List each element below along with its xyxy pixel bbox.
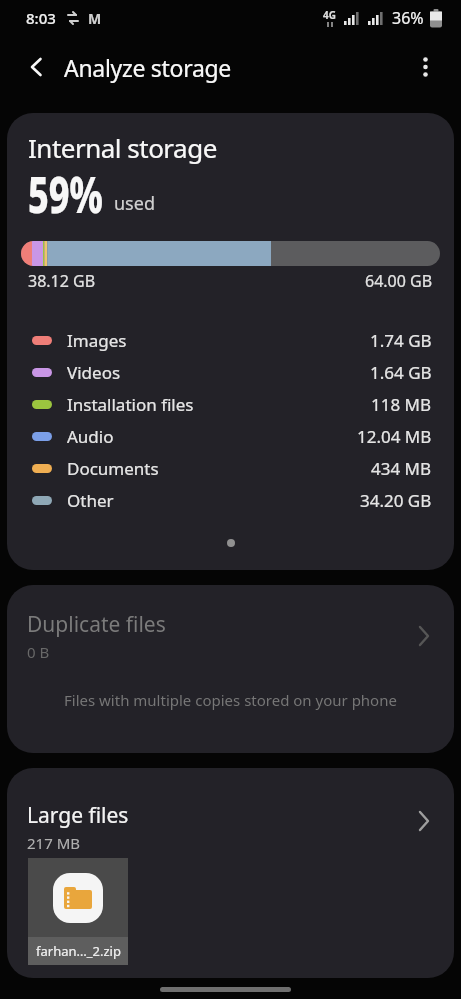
staticText: 59%	[28, 159, 103, 228]
staticText: 12.04 MB	[357, 425, 432, 448]
button[interactable]: Videos	[28, 356, 433, 388]
staticText: Analyze storage	[64, 52, 232, 83]
staticText: Documents	[67, 457, 159, 480]
staticText: 36%	[392, 7, 424, 29]
staticText: 1.64 GB	[370, 361, 432, 384]
staticText: M	[88, 9, 102, 28]
button[interactable]: Images	[28, 324, 433, 356]
staticText: 0 B	[27, 642, 50, 662]
staticText: 64.00 GB	[365, 270, 433, 292]
button[interactable]	[401, 43, 449, 91]
button[interactable]: Documents	[28, 452, 433, 484]
staticText: 434 MB	[371, 457, 432, 480]
staticText: Large files	[27, 801, 129, 830]
staticText: 118 MB	[371, 393, 432, 416]
staticText: 38.12 GB	[28, 270, 96, 292]
staticText: Images	[67, 329, 127, 352]
staticText: farhan…_2.zip	[36, 942, 121, 960]
button[interactable]: Duplicate files	[7, 585, 454, 753]
staticText: 8:03	[26, 8, 56, 28]
button[interactable]	[12, 42, 62, 92]
staticText: Files with multiple copies stored on you…	[64, 690, 397, 710]
staticText: 1.74 GB	[370, 329, 432, 352]
staticText: used	[114, 191, 155, 216]
staticText: 217 MB	[27, 833, 80, 853]
staticText: Internal storage	[28, 130, 217, 165]
staticText: Audio	[67, 425, 114, 448]
staticText: 34.20 GB	[360, 489, 432, 512]
button[interactable]: Installation files	[28, 388, 433, 420]
staticText: Installation files	[67, 393, 194, 416]
staticText: Other	[67, 489, 114, 512]
staticText: Videos	[67, 361, 121, 384]
button[interactable]: Large files	[7, 768, 454, 978]
staticText: 4G	[323, 8, 336, 22]
button[interactable]: Audio	[28, 420, 433, 452]
staticText: Duplicate files	[27, 610, 166, 639]
button[interactable]: Other	[28, 484, 433, 516]
